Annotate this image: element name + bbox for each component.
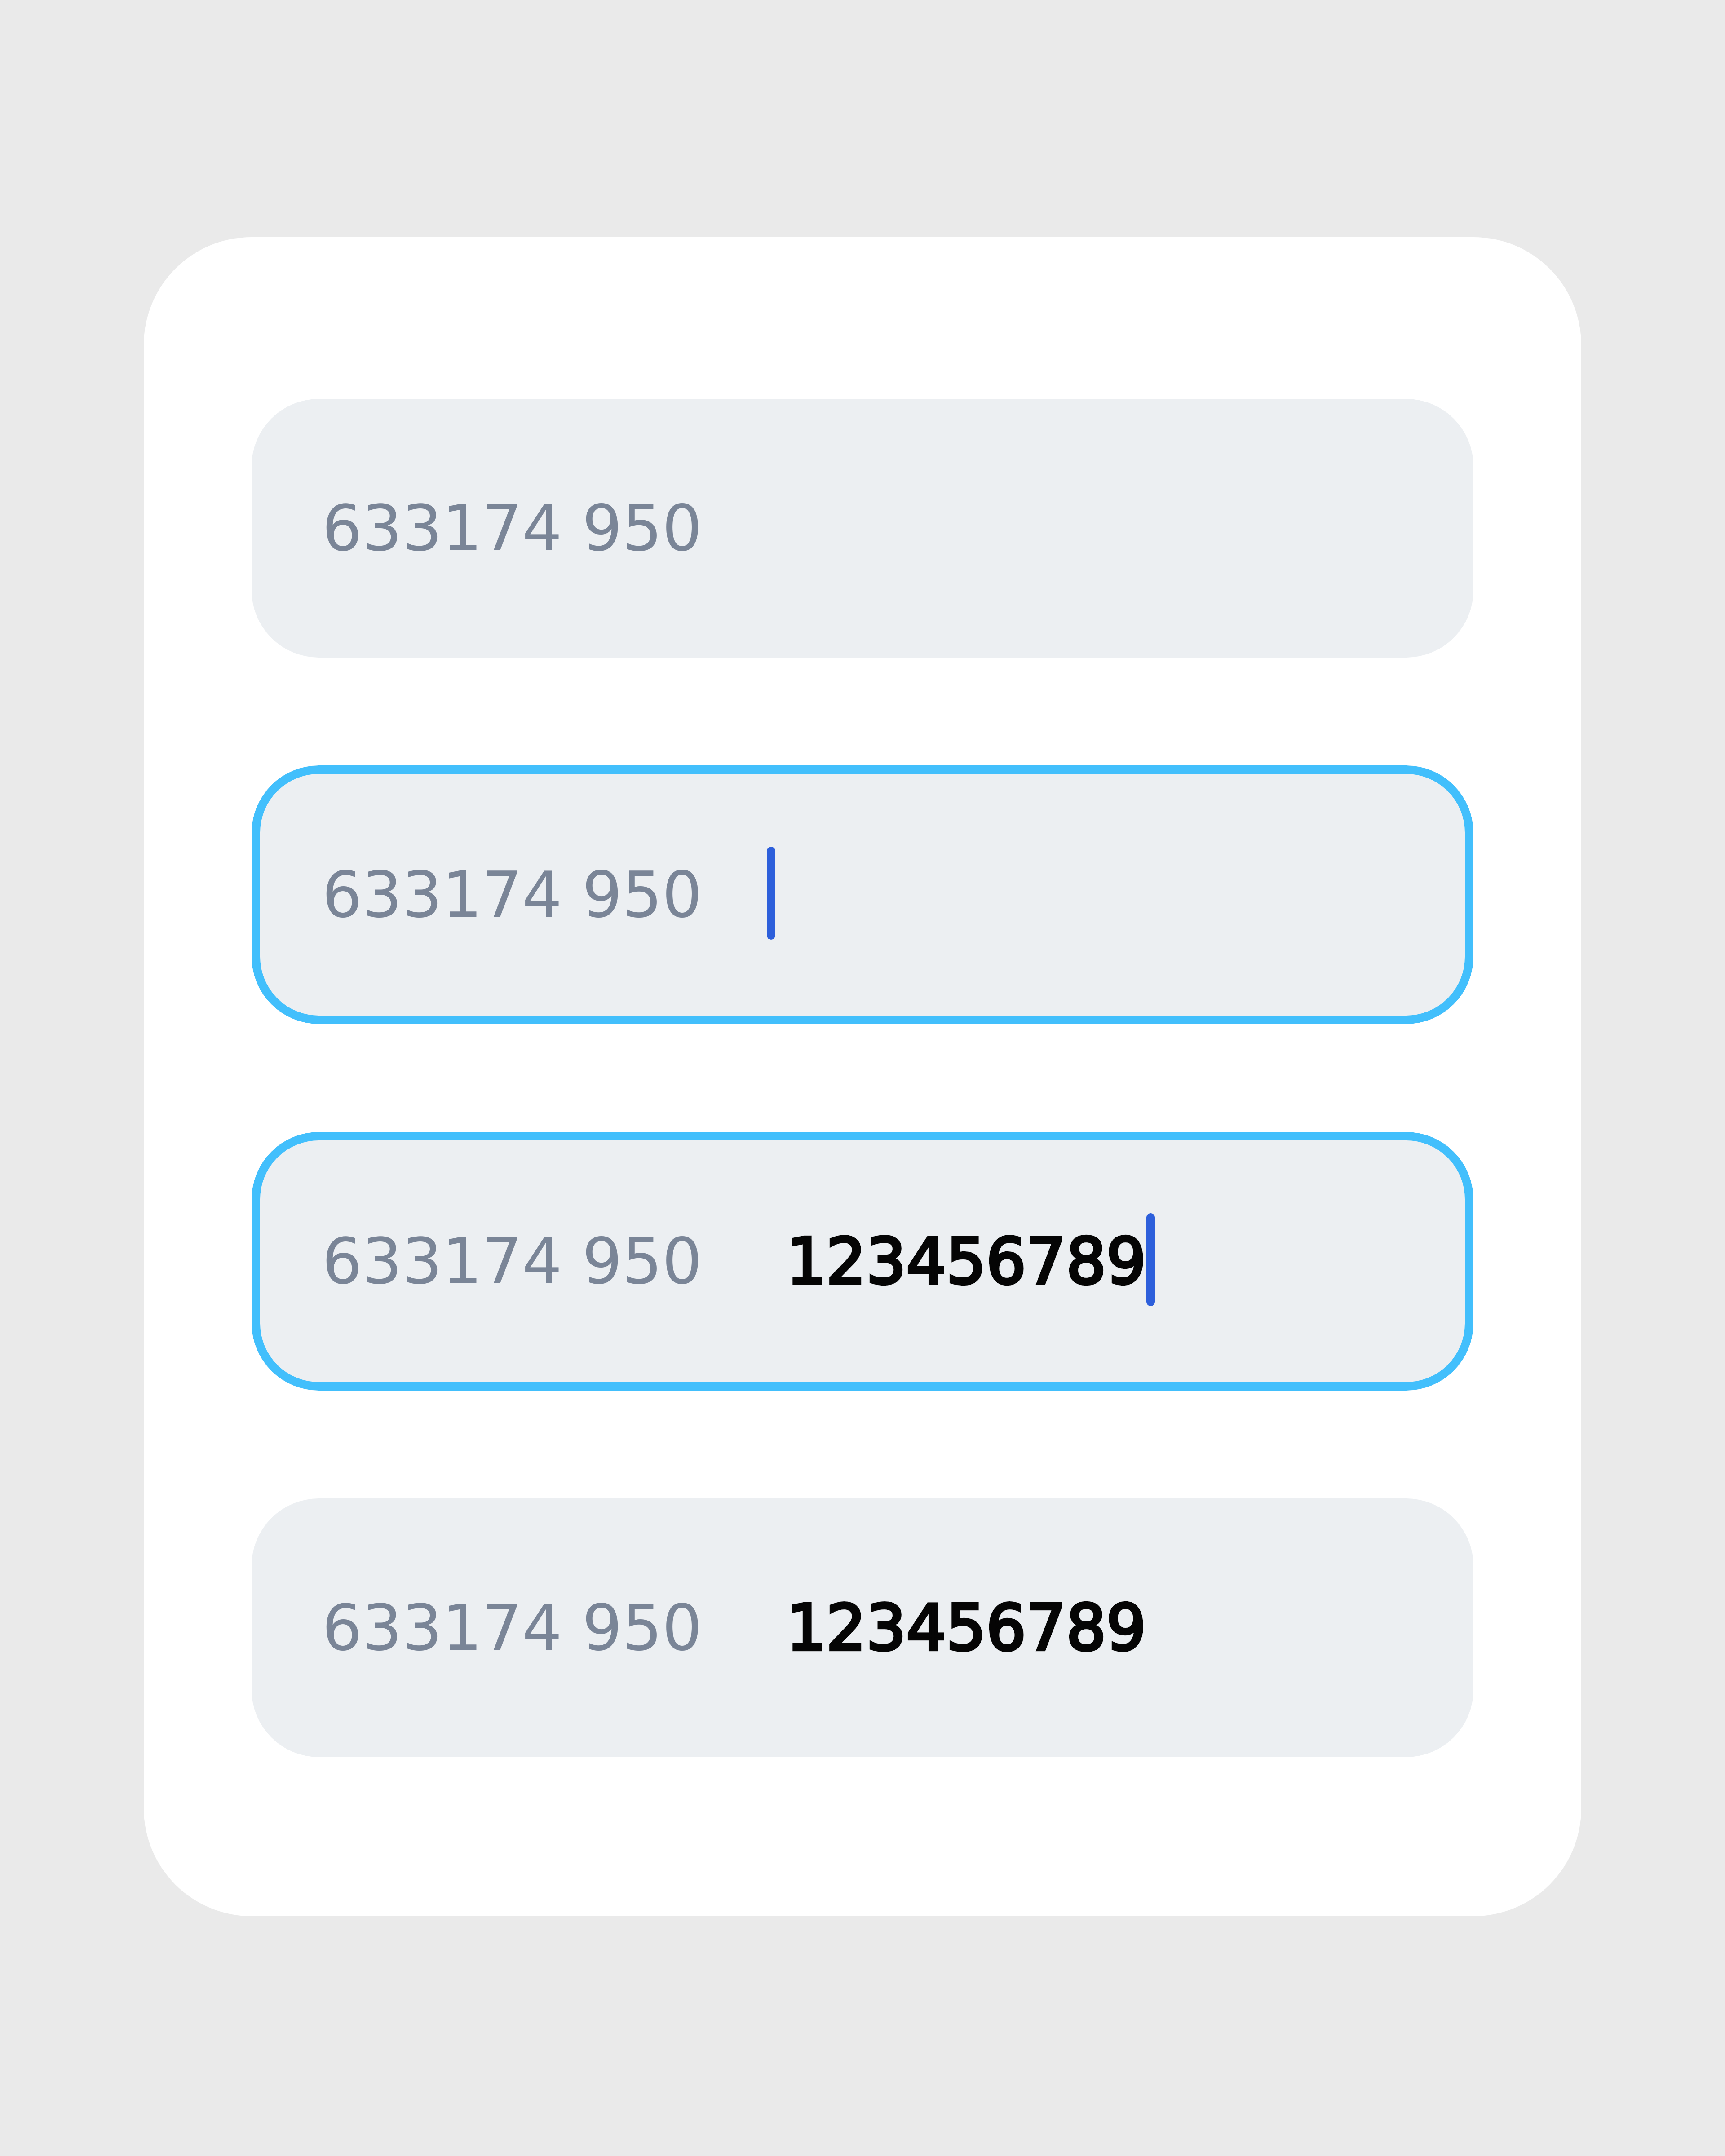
button[interactable]: 633174 950	[252, 765, 1473, 1024]
staticText: 123456789	[786, 1591, 1146, 1665]
staticText: 123456789	[786, 1225, 1146, 1298]
button[interactable]: 633174 950	[252, 399, 1473, 658]
button[interactable]: 633174 950	[252, 1498, 1473, 1757]
staticText: 123456789	[786, 1591, 1146, 1665]
staticText: 633174 950	[322, 492, 703, 565]
staticText: 633174 950	[322, 1225, 703, 1298]
staticText: 633174 950	[322, 1591, 703, 1665]
staticText: 633174 950	[322, 858, 703, 932]
staticText: 123456789	[786, 1225, 1146, 1298]
button[interactable]: 633174 950	[252, 1132, 1473, 1391]
